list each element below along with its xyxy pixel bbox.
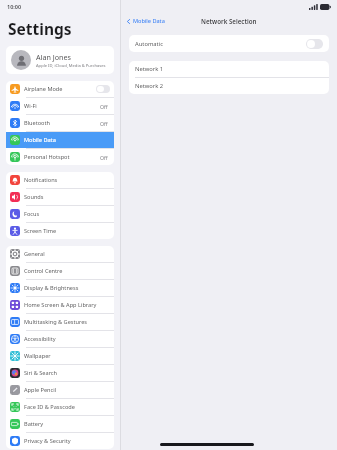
staticText: Personal Hotspot [24, 153, 100, 161]
staticText: Network 1 [135, 65, 164, 73]
button[interactable]: Home Screen & App Library [6, 297, 114, 313]
button[interactable]: Apple Pencil [6, 382, 114, 398]
staticText: Focus [24, 210, 110, 218]
staticText: Off [100, 103, 108, 110]
staticText: Network Selection [201, 17, 257, 25]
staticText: Multitasking & Gestures [24, 318, 110, 326]
button[interactable]: Wi-Fi [6, 98, 114, 114]
staticText: Control Centre [24, 267, 110, 275]
button[interactable]: Alan Jones [6, 46, 114, 74]
button[interactable]: Airplane Mode [6, 81, 114, 97]
button[interactable]: Multitasking & Gestures [6, 314, 114, 330]
button[interactable]: Privacy & Security [6, 433, 114, 449]
button[interactable]: Sounds [6, 189, 114, 205]
staticText: Network 2 [135, 82, 164, 90]
button[interactable]: Bluetooth [6, 115, 114, 131]
button[interactable]: Accessibility [6, 331, 114, 347]
button[interactable]: Toggle off [96, 85, 110, 93]
staticText: Mobile Data [133, 17, 165, 25]
staticText: Privacy & Security [24, 437, 110, 445]
button[interactable]: Mobile Data [121, 15, 169, 27]
button[interactable]: Mobile Data [6, 132, 114, 148]
staticText: Automatic [135, 40, 306, 48]
staticText: Screen Time [24, 227, 110, 235]
button[interactable]: Screen Time [6, 223, 114, 239]
button[interactable]: Battery [6, 416, 114, 432]
button[interactable]: Siri & Search [6, 365, 114, 381]
button[interactable]: Toggle off [306, 39, 323, 49]
staticText: Airplane Mode [24, 85, 96, 93]
button[interactable]: Display & Brightness [6, 280, 114, 296]
button[interactable]: Network 1 [129, 61, 329, 77]
staticText: Settings [8, 18, 72, 39]
staticText: General [24, 250, 110, 258]
staticText: Bluetooth [24, 119, 100, 127]
button[interactable]: Notifications [6, 172, 114, 188]
staticText: Notifications [24, 176, 110, 184]
button[interactable]: General [6, 246, 114, 262]
staticText: Battery [24, 420, 110, 428]
staticText: Apple ID, iCloud, Media & Purchases [36, 63, 106, 69]
button[interactable]: Automatic [129, 35, 329, 52]
button[interactable]: Focus [6, 206, 114, 222]
staticText: Accessibility [24, 335, 110, 343]
staticText: Alan Jones [36, 52, 72, 62]
staticText: Sounds [24, 193, 110, 201]
staticText: Off [100, 120, 108, 127]
button[interactable]: Personal Hotspot [6, 149, 114, 165]
staticText: Off [100, 154, 108, 161]
staticText: 10:00 [7, 3, 22, 10]
staticText: Wi-Fi [24, 102, 100, 110]
staticText: Wallpaper [24, 352, 110, 360]
button[interactable]: Network 2 [129, 78, 329, 94]
staticText: Siri & Search [24, 369, 110, 377]
button[interactable]: Face ID & Passcode [6, 399, 114, 415]
staticText: Face ID & Passcode [24, 403, 110, 411]
staticText: Mobile Data [24, 136, 110, 144]
button[interactable]: Control Centre [6, 263, 114, 279]
staticText: Display & Brightness [24, 284, 110, 292]
staticText: Home Screen & App Library [24, 301, 110, 309]
staticText: Apple Pencil [24, 386, 110, 394]
button[interactable]: Wallpaper [6, 348, 114, 364]
